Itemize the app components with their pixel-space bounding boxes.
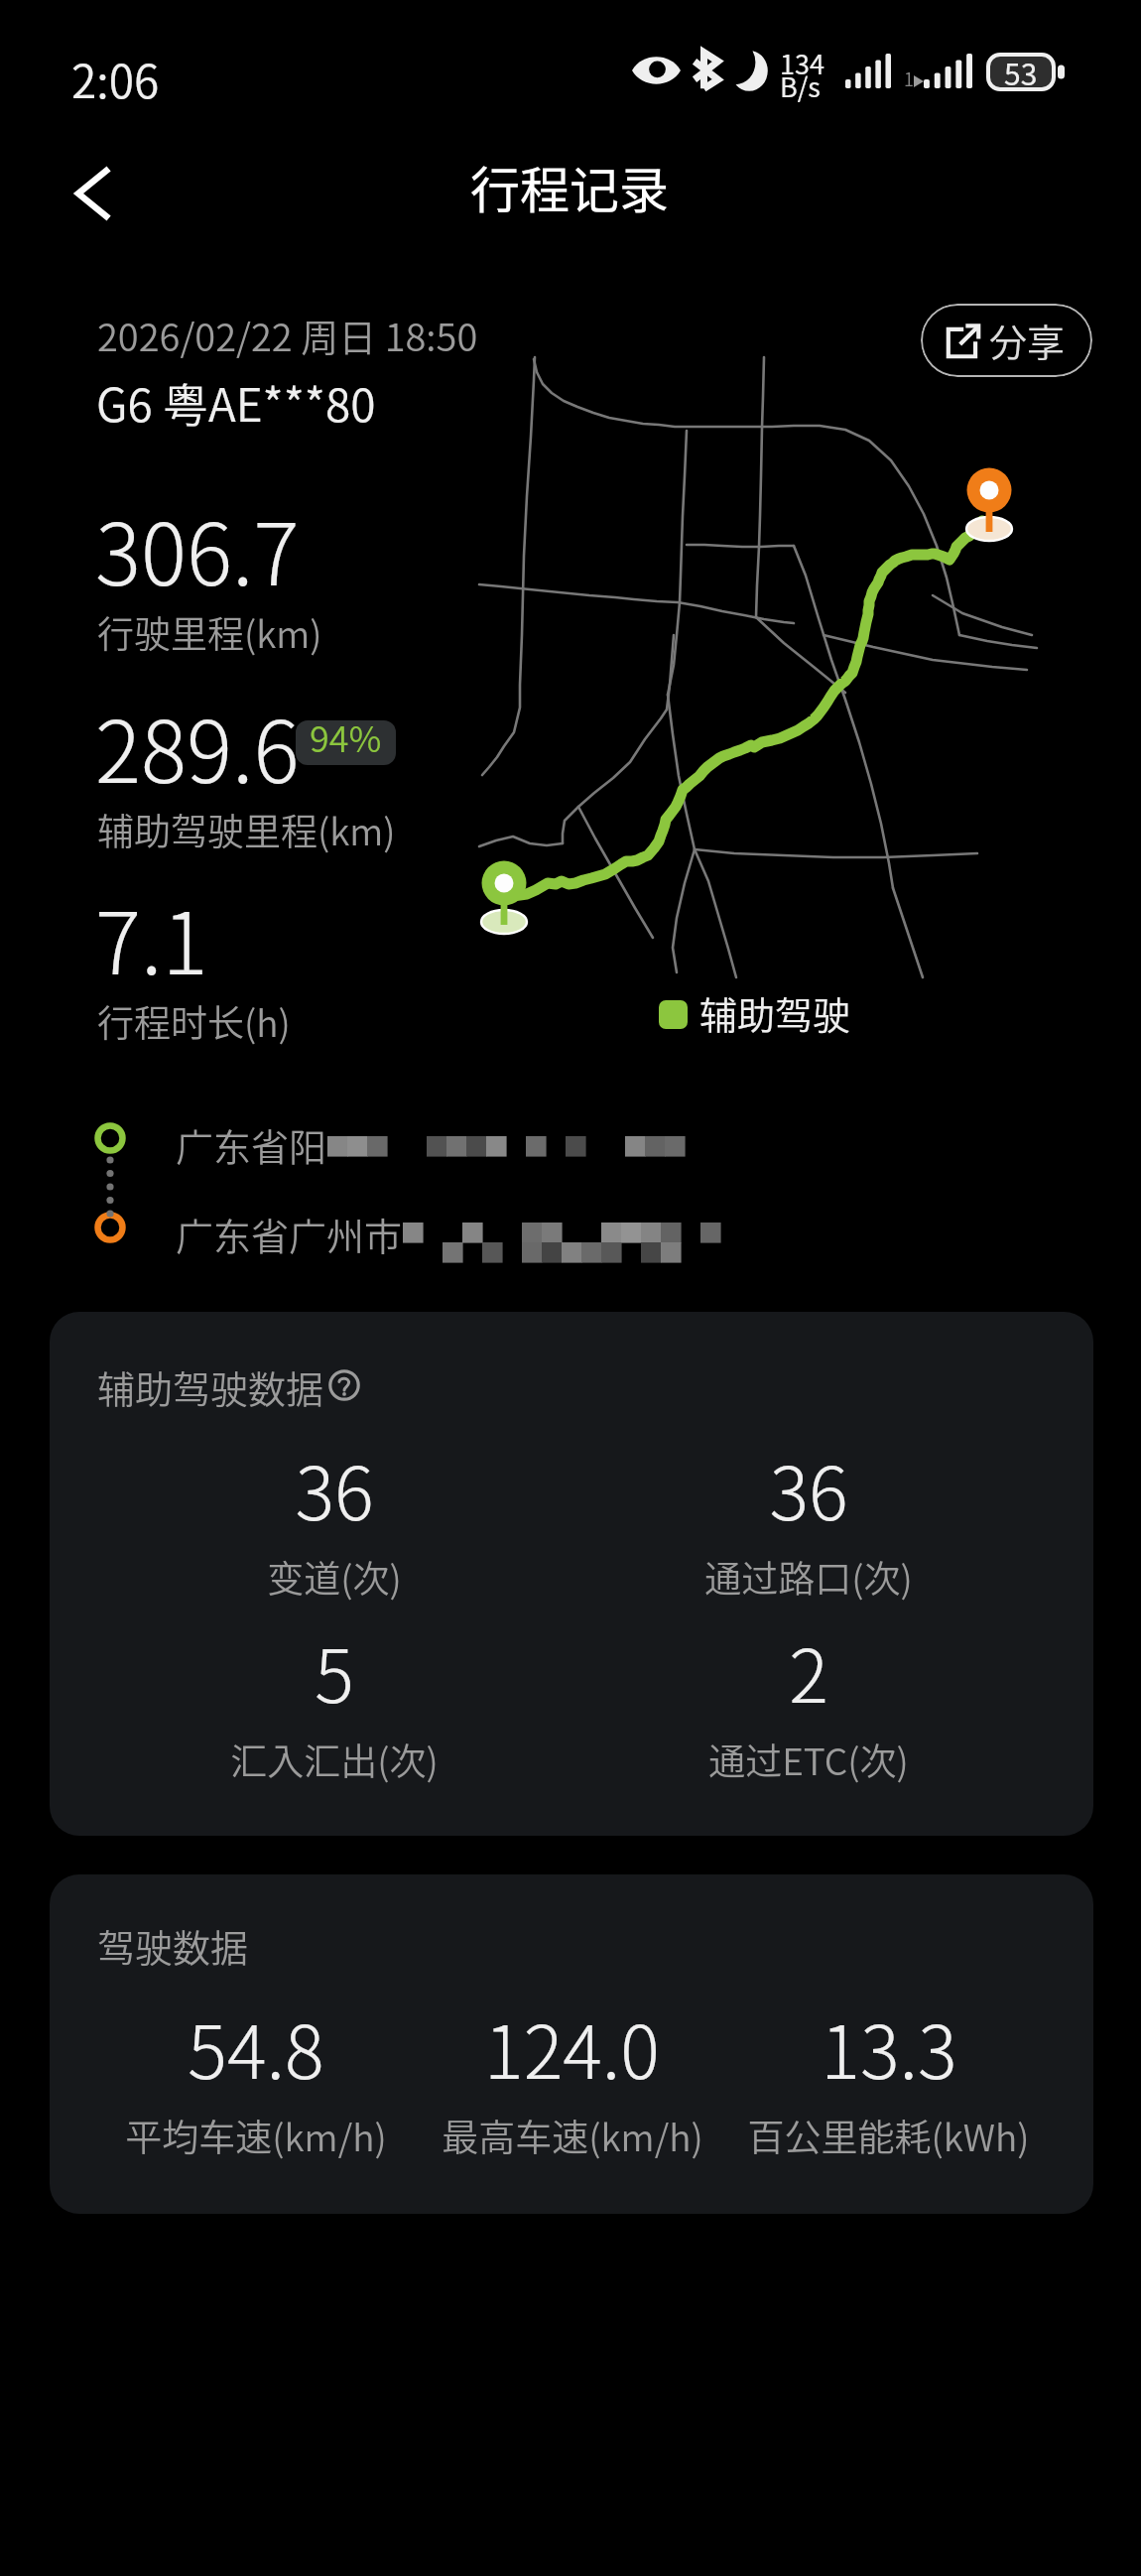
staticText: 5 bbox=[315, 1617, 354, 1724]
staticText: 54.8 bbox=[188, 1994, 324, 2100]
staticText: 最高车速(km/h) bbox=[442, 2109, 703, 2162]
staticText: 辅助驾驶 bbox=[699, 985, 851, 1040]
staticText: 行程时长(h) bbox=[97, 994, 291, 1048]
staticText: 36 bbox=[769, 1435, 848, 1541]
staticText: 1 bbox=[904, 65, 914, 91]
staticText: 驾驶数据 bbox=[97, 1918, 249, 1973]
button[interactable]: Back bbox=[44, 147, 137, 240]
staticText: 百公里能耗(kWh) bbox=[747, 2109, 1030, 2162]
button[interactable]: 辅助驾驶 bbox=[659, 986, 851, 1041]
staticText: 2 bbox=[789, 1617, 828, 1724]
staticText: 汇入汇出(次) bbox=[230, 1733, 439, 1786]
button[interactable]: 广东省阳 bbox=[176, 1109, 732, 1165]
staticText: 94% bbox=[310, 720, 382, 755]
staticText: 行驶里程(km) bbox=[97, 605, 322, 659]
staticText: 134 bbox=[780, 44, 824, 82]
button[interactable]: 辅助驾驶数据 bbox=[97, 1355, 360, 1410]
staticText: 13.3 bbox=[821, 1994, 957, 2100]
other: Help bbox=[328, 1367, 360, 1399]
staticText: 通过ETC(次) bbox=[708, 1733, 909, 1786]
staticText: 53 bbox=[1004, 51, 1038, 93]
staticText: 分享 bbox=[989, 313, 1066, 367]
staticText: 2:06 bbox=[71, 46, 160, 112]
button[interactable]: Assisted driving share bbox=[296, 720, 396, 765]
staticText: 平均车速(km/h) bbox=[125, 2109, 387, 2162]
staticText: 306.7 bbox=[95, 486, 300, 610]
staticText: 行程记录 bbox=[470, 151, 669, 222]
staticText: B/s bbox=[780, 66, 821, 105]
staticText: 2026/02/22 周日 18:50 bbox=[97, 308, 478, 362]
staticText: G6 粤AE***80 bbox=[96, 369, 376, 436]
staticText: 124.0 bbox=[484, 1994, 660, 2100]
button[interactable]: 广东省广州市 bbox=[176, 1199, 775, 1256]
button[interactable]: 分享 bbox=[921, 304, 1092, 377]
staticText: 289.6 bbox=[95, 684, 300, 808]
staticText: 36 bbox=[295, 1435, 374, 1541]
staticText: 变道(次) bbox=[267, 1550, 402, 1604]
staticText: 通过路口(次) bbox=[704, 1550, 913, 1604]
staticText: 广东省广州市 bbox=[176, 1207, 403, 1256]
staticText: 广东省阳 bbox=[176, 1117, 327, 1165]
button[interactable]: Trip map bbox=[456, 357, 1072, 972]
staticText: 辅助驾驶数据 bbox=[97, 1359, 324, 1414]
staticText: 7.1 bbox=[95, 875, 208, 999]
staticText: 辅助驾驶里程(km) bbox=[97, 803, 396, 856]
